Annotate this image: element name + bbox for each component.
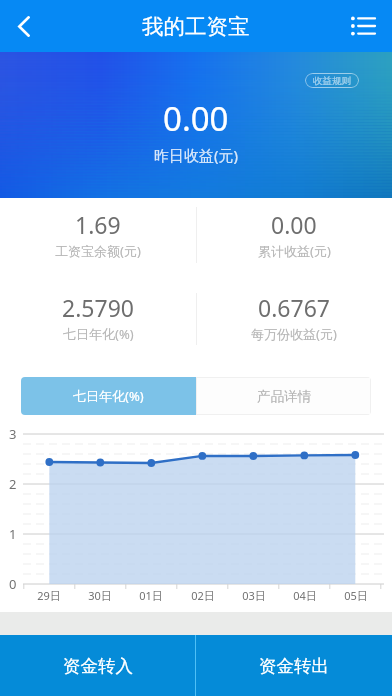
staticText: 七日年化(%): [63, 325, 134, 343]
staticText: 每万份收益(元): [251, 325, 337, 343]
button[interactable]: 资金转出: [196, 635, 392, 696]
staticText: 七日年化(%): [73, 387, 144, 405]
staticText: 资金转入: [63, 655, 133, 677]
staticText: 0: [9, 575, 17, 593]
staticText: 昨日收益(元): [154, 145, 239, 165]
button[interactable]: 产品详情: [196, 377, 371, 415]
staticText: 02日: [191, 588, 215, 603]
staticText: 0.6767: [258, 292, 330, 323]
button[interactable]: 七日年化(%): [21, 377, 196, 415]
staticText: 产品详情: [257, 388, 311, 405]
button[interactable]: 资金转入: [0, 635, 195, 696]
staticText: 3: [9, 425, 17, 443]
staticText: 29日: [37, 588, 61, 603]
button[interactable]: 收益规则: [305, 73, 359, 88]
staticText: 05日: [344, 588, 368, 603]
staticText: 收益规则: [313, 75, 351, 87]
button[interactable]: Menu: [334, 0, 392, 52]
staticText: 我的工资宝: [142, 13, 250, 40]
staticText: 1.69: [75, 209, 121, 240]
staticText: 工资宝余额(元): [55, 242, 141, 260]
button[interactable]: Back: [0, 0, 48, 52]
staticText: 2: [9, 475, 17, 493]
staticText: 2.5790: [62, 292, 134, 323]
staticText: 30日: [88, 588, 112, 603]
staticText: 资金转出: [259, 655, 329, 677]
staticText: 累计收益(元): [258, 242, 331, 260]
staticText: 1: [9, 525, 17, 543]
staticText: 0.00: [271, 209, 317, 240]
staticText: 01日: [139, 588, 163, 603]
staticText: 03日: [242, 588, 266, 603]
staticText: 04日: [293, 588, 317, 603]
staticText: 0.00: [163, 96, 229, 141]
